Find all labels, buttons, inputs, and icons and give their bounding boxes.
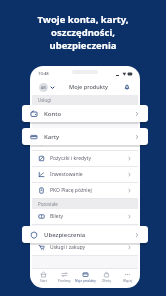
button[interactable]: Oferty <box>96 269 117 286</box>
staticText: Moje produkty <box>75 279 96 283</box>
button[interactable]: Powiadomienia <box>122 82 132 92</box>
button[interactable]: Pożyczki i kredyty <box>32 151 138 166</box>
staticText: AN <box>41 86 46 90</box>
button[interactable]: Profil <box>38 82 56 93</box>
button[interactable]: Start <box>32 269 54 286</box>
staticText: 10:48 <box>38 71 49 77</box>
button[interactable]: Moje produkty <box>75 269 96 286</box>
staticText: Pozostałe <box>38 201 58 207</box>
button[interactable]: Inwestowanie <box>32 167 138 182</box>
staticText: Usługi i zakupy <box>50 244 86 251</box>
staticText: Ubezpieczenia <box>44 231 86 239</box>
button[interactable]: Usługi i zakupy <box>32 240 138 255</box>
staticText: Karty <box>44 133 60 141</box>
staticText: Twoje konta, karty, oszczędności, ubezpi… <box>8 13 158 52</box>
button[interactable]: Konto <box>22 105 148 122</box>
staticText: Konto <box>44 110 62 118</box>
button[interactable]: Ubezpieczenia <box>22 226 148 243</box>
staticText: Oferty <box>102 279 111 283</box>
staticText: Usługi <box>38 97 51 103</box>
staticText: Oszczędzanie <box>50 139 82 146</box>
staticText: Pożyczki i kredyty <box>50 155 91 162</box>
button[interactable]: Więcej <box>117 269 138 286</box>
button[interactable]: PKO Płacę później <box>32 183 138 198</box>
button[interactable]: Karty <box>22 128 148 145</box>
button[interactable]: Przelewy <box>54 269 75 286</box>
staticText: Moje produkty <box>69 83 109 91</box>
staticText: Przelewy <box>58 279 71 283</box>
button[interactable]: Oszczędzanie <box>32 135 138 150</box>
button[interactable]: Bilety <box>32 209 138 224</box>
staticText: Inwestowanie <box>50 171 83 178</box>
staticText: Bilety <box>50 213 64 220</box>
staticText: Start <box>40 279 47 283</box>
staticText: Więcej <box>123 279 133 283</box>
staticText: PKO Płacę później <box>50 187 92 194</box>
